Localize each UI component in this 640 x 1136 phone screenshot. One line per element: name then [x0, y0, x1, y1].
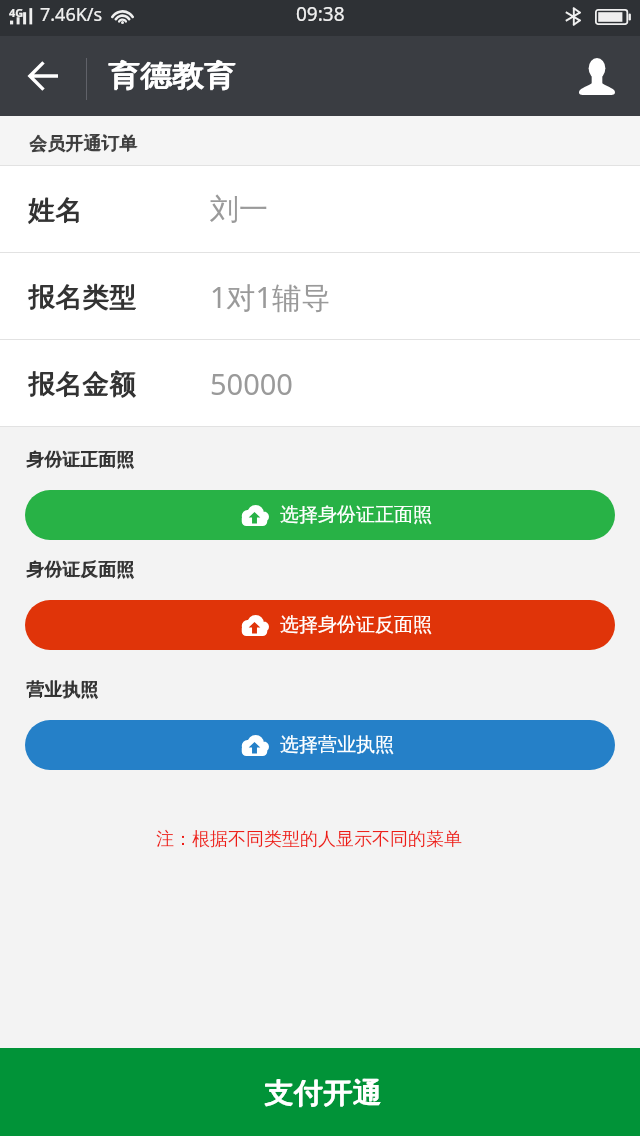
staticText: 刘一: [210, 191, 268, 228]
staticText: 身份证正面照: [26, 448, 134, 471]
staticText: 1对1辅导: [210, 277, 331, 317]
button[interactable]: 选择身份证反面照: [25, 600, 615, 650]
staticText: 09:38: [296, 1, 345, 27]
staticText: 身份证正面照: [26, 449, 134, 472]
button[interactable]: Back: [0, 36, 87, 116]
staticText: 7.46K/s: [40, 2, 103, 27]
staticText: 营业执照: [27, 678, 99, 701]
staticText: 50000: [210, 364, 293, 403]
staticText: 支付开通: [264, 1075, 382, 1110]
staticText: 育德教育: [109, 57, 237, 94]
staticText: 报名类型: [29, 280, 137, 314]
staticText: 4G: [9, 5, 24, 20]
button[interactable]: 支付开通: [0, 1048, 640, 1136]
staticText: 育德教育: [108, 57, 236, 94]
button[interactable]: 选择营业执照: [25, 720, 615, 770]
staticText: 会员开通订单: [29, 133, 137, 156]
staticText: 报名类型: [28, 280, 136, 314]
staticText: 姓名: [28, 194, 82, 228]
staticText: 身份证反面照: [26, 558, 134, 581]
staticText: 姓名: [29, 193, 83, 227]
button[interactable]: 选择身份证正面照: [25, 490, 615, 540]
staticText: 育德教育: [108, 58, 236, 95]
staticText: 支付开通: [264, 1076, 382, 1111]
staticText: 选择营业执照: [280, 733, 394, 757]
staticText: 报名类型: [28, 281, 136, 315]
staticText: 选择身份证反面照: [280, 613, 432, 637]
staticText: 支付开通: [265, 1075, 383, 1110]
button[interactable]: 报名类型: [0, 253, 640, 340]
button[interactable]: 报名金额: [0, 340, 640, 427]
staticText: 选择身份证正面照: [280, 503, 432, 527]
staticText: 姓名: [28, 193, 82, 227]
staticText: 身份证正面照: [27, 448, 135, 471]
staticText: 营业执照: [26, 678, 98, 701]
staticText: 身份证反面照: [26, 559, 134, 582]
staticText: 身份证反面照: [27, 558, 135, 581]
button[interactable]: Profile: [554, 36, 640, 116]
staticText: 报名金额: [29, 367, 137, 401]
staticText: 报名金额: [28, 367, 136, 401]
button[interactable]: 姓名: [0, 166, 640, 253]
staticText: 会员开通订单: [30, 132, 138, 155]
staticText: 报名金额: [28, 368, 136, 402]
staticText: 注：根据不同类型的人显示不同的菜单: [0, 828, 629, 851]
staticText: 会员开通订单: [29, 132, 137, 155]
staticText: 营业执照: [26, 679, 98, 702]
